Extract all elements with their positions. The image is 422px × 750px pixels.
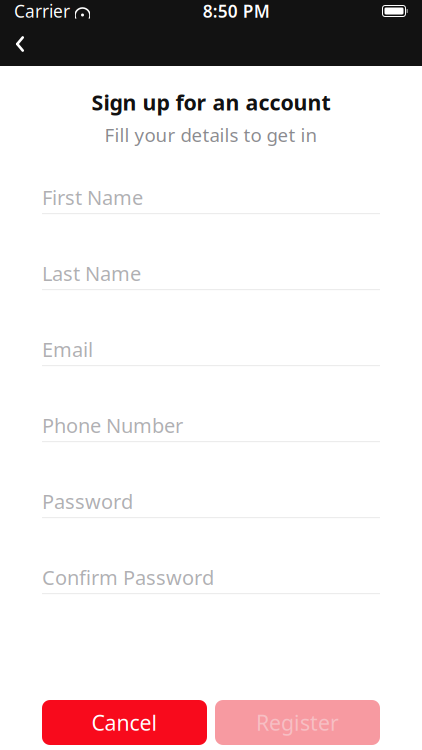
staticText: Email — [42, 336, 93, 362]
staticText: Phone Number — [42, 412, 183, 438]
button[interactable]: Cancel — [42, 700, 207, 745]
staticText: 8:50 PM — [203, 0, 270, 22]
staticText: First Name — [42, 184, 143, 210]
staticText: Password — [42, 488, 133, 514]
staticText: Sign up for an account — [91, 88, 330, 116]
button[interactable]: Back — [0, 22, 40, 66]
staticText: Cancel — [91, 708, 157, 737]
button[interactable]: Register — [215, 700, 380, 745]
staticText: Fill your details to get in — [104, 122, 317, 147]
staticText: Last Name — [42, 260, 141, 286]
staticText: Carrier — [14, 0, 70, 22]
staticText: Confirm Password — [42, 564, 214, 590]
staticText: Register — [256, 708, 339, 737]
